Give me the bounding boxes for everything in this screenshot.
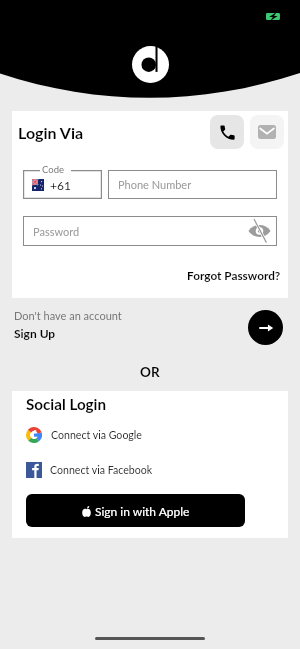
staticText: OR bbox=[140, 364, 160, 380]
button[interactable]: Continue bbox=[248, 310, 283, 345]
staticText: Forgot Password? bbox=[187, 268, 281, 282]
staticText: Connect via Google bbox=[51, 429, 142, 442]
staticText: +61 bbox=[50, 178, 71, 192]
staticText: Don't have an account bbox=[14, 309, 122, 322]
staticText: Social Login bbox=[26, 395, 106, 413]
button[interactable]: Login with email bbox=[250, 115, 284, 149]
button[interactable]: Sign in with Apple bbox=[26, 494, 245, 527]
staticText: Phone Number bbox=[118, 178, 192, 191]
staticText: Connect via Facebook bbox=[50, 464, 153, 477]
button[interactable]: Forgot Password? bbox=[27, 268, 281, 282]
button[interactable]: Don't have an account bbox=[14, 309, 122, 340]
staticText: Code bbox=[42, 164, 64, 175]
staticText: Password bbox=[33, 225, 80, 238]
button[interactable]: Connect via Facebook bbox=[26, 462, 153, 478]
button[interactable]: Login with phone bbox=[210, 115, 244, 149]
button[interactable]: Connect via Google bbox=[26, 427, 142, 443]
staticText: Login Via bbox=[18, 123, 84, 142]
staticText: Sign Up bbox=[14, 326, 56, 340]
staticText: Sign in with Apple bbox=[95, 504, 190, 518]
button[interactable]: Show password bbox=[246, 218, 272, 244]
